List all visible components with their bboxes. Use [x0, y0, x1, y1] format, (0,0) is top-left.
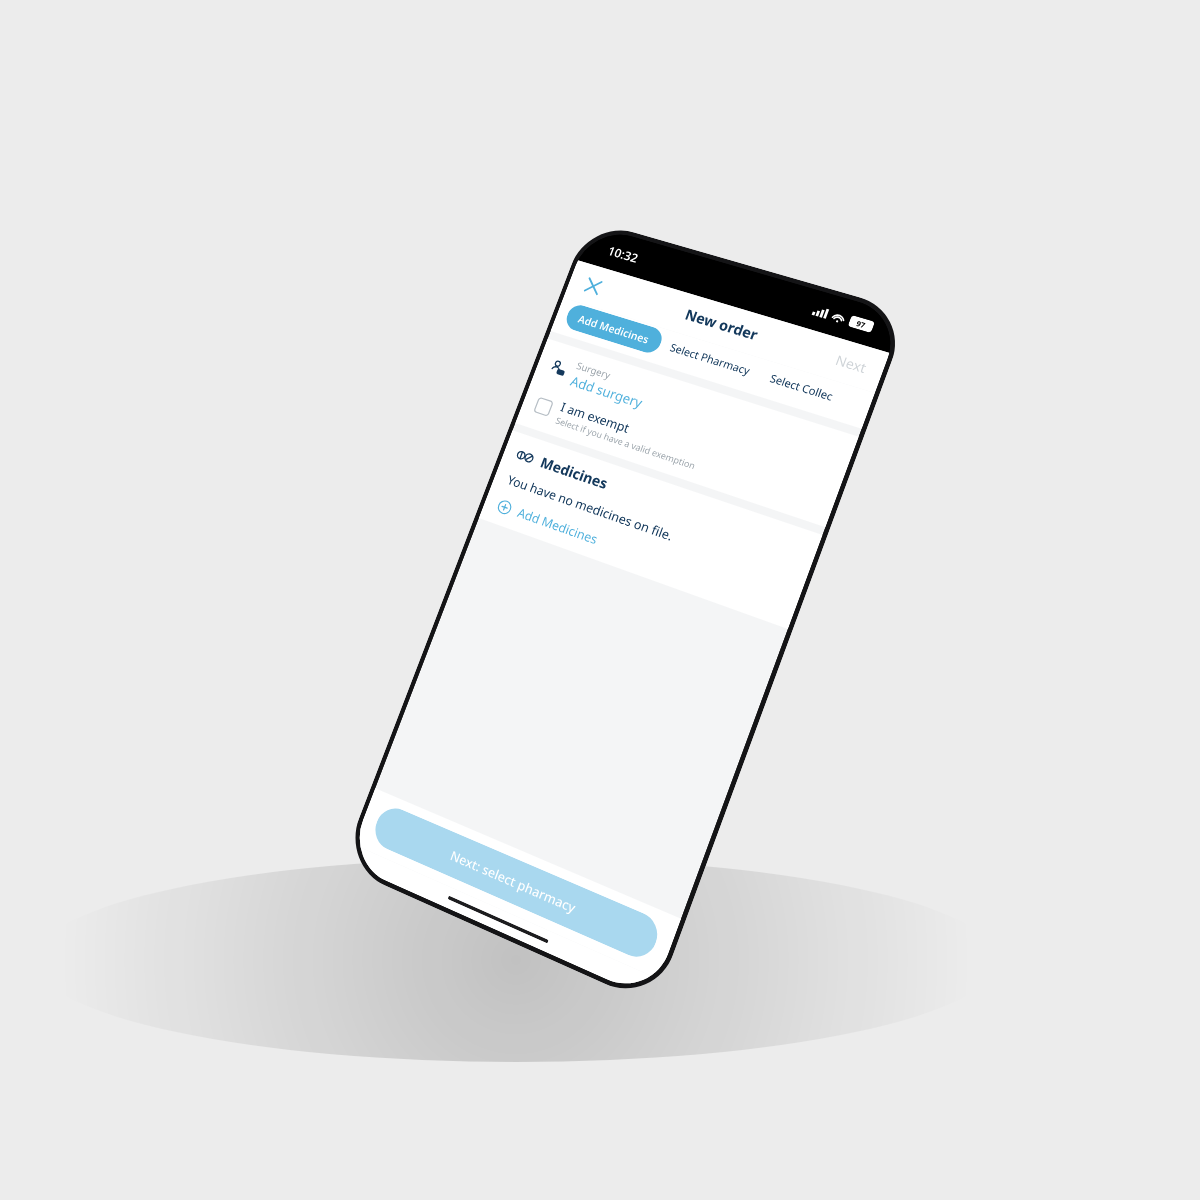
staticText: Medicines — [538, 452, 611, 493]
staticText: Select Pharmacy — [668, 340, 752, 378]
staticText: 10:32 — [605, 242, 641, 266]
staticText: Select Collec — [768, 370, 835, 403]
button[interactable]: Add surgery — [568, 372, 645, 411]
button[interactable]: Select Collec — [755, 361, 848, 413]
staticText: Next — [833, 350, 869, 377]
button[interactable]: Next: select pharmacy — [369, 802, 663, 964]
staticText: I am exempt — [558, 398, 632, 436]
button[interactable]: I am exempt — [531, 391, 703, 472]
staticText: New order — [682, 305, 761, 345]
button[interactable]: Add Medicines — [563, 302, 665, 356]
staticText: 97 — [855, 318, 868, 330]
button[interactable]: Next — [823, 341, 879, 386]
button[interactable]: Select Pharmacy — [656, 331, 765, 387]
staticText: Add Medicines — [515, 504, 601, 548]
staticText: Select if you have a valid exemption — [554, 414, 697, 472]
button[interactable]: Close — [571, 265, 615, 307]
staticText: Add surgery — [568, 372, 645, 411]
button[interactable]: Add Medicines — [495, 497, 601, 548]
staticText: Add Medicines — [576, 311, 652, 346]
staticText: Next: select pharmacy — [448, 846, 579, 917]
staticText: Surgery — [575, 359, 613, 382]
staticText: You have no medicines on file. — [505, 471, 676, 544]
